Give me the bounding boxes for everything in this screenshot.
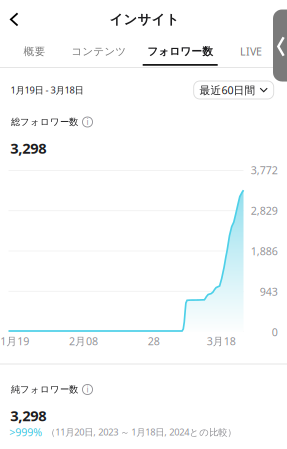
staticText: 3,772 — [251, 163, 278, 177]
staticText: i — [86, 117, 88, 127]
staticText: 総フォロワー数 — [11, 116, 78, 128]
staticText: 純フォロワー数 — [11, 384, 78, 395]
staticText: 3,298 — [10, 138, 46, 158]
staticText: i — [86, 384, 88, 395]
staticText: 概要 — [24, 45, 46, 58]
staticText: インサイト — [109, 11, 179, 28]
staticText: >999% — [9, 425, 42, 439]
staticText: 1,886 — [251, 244, 278, 258]
button[interactable]: コンテンツ — [67, 39, 131, 66]
staticText: 2月08 — [69, 334, 98, 348]
staticText: 28 — [148, 334, 160, 348]
staticText: 1月19 — [0, 334, 29, 348]
staticText: 0 — [272, 325, 278, 339]
staticText: フォロワー数 — [147, 45, 213, 58]
staticText: 3月18 — [207, 334, 236, 348]
staticText: 943 — [260, 284, 278, 299]
button[interactable]: LIVE — [236, 39, 266, 66]
staticText: 3,298 — [10, 406, 46, 425]
button[interactable]: 概要 — [15, 39, 55, 66]
staticText: 2,829 — [251, 203, 278, 218]
staticText: LIVE — [240, 44, 262, 58]
staticText: 1月19日 - 3月18日 — [10, 84, 83, 96]
staticText: 最近60日間 — [200, 83, 256, 97]
staticText: コンテンツ — [71, 45, 126, 58]
staticText: （11月20日, 2023 ～ 1月18日, 2024との比較） — [46, 426, 236, 438]
button[interactable]: Back — [0, 2, 28, 36]
button[interactable]: フォロワー数 — [143, 39, 218, 66]
button[interactable]: 最近60日間 — [194, 81, 274, 99]
